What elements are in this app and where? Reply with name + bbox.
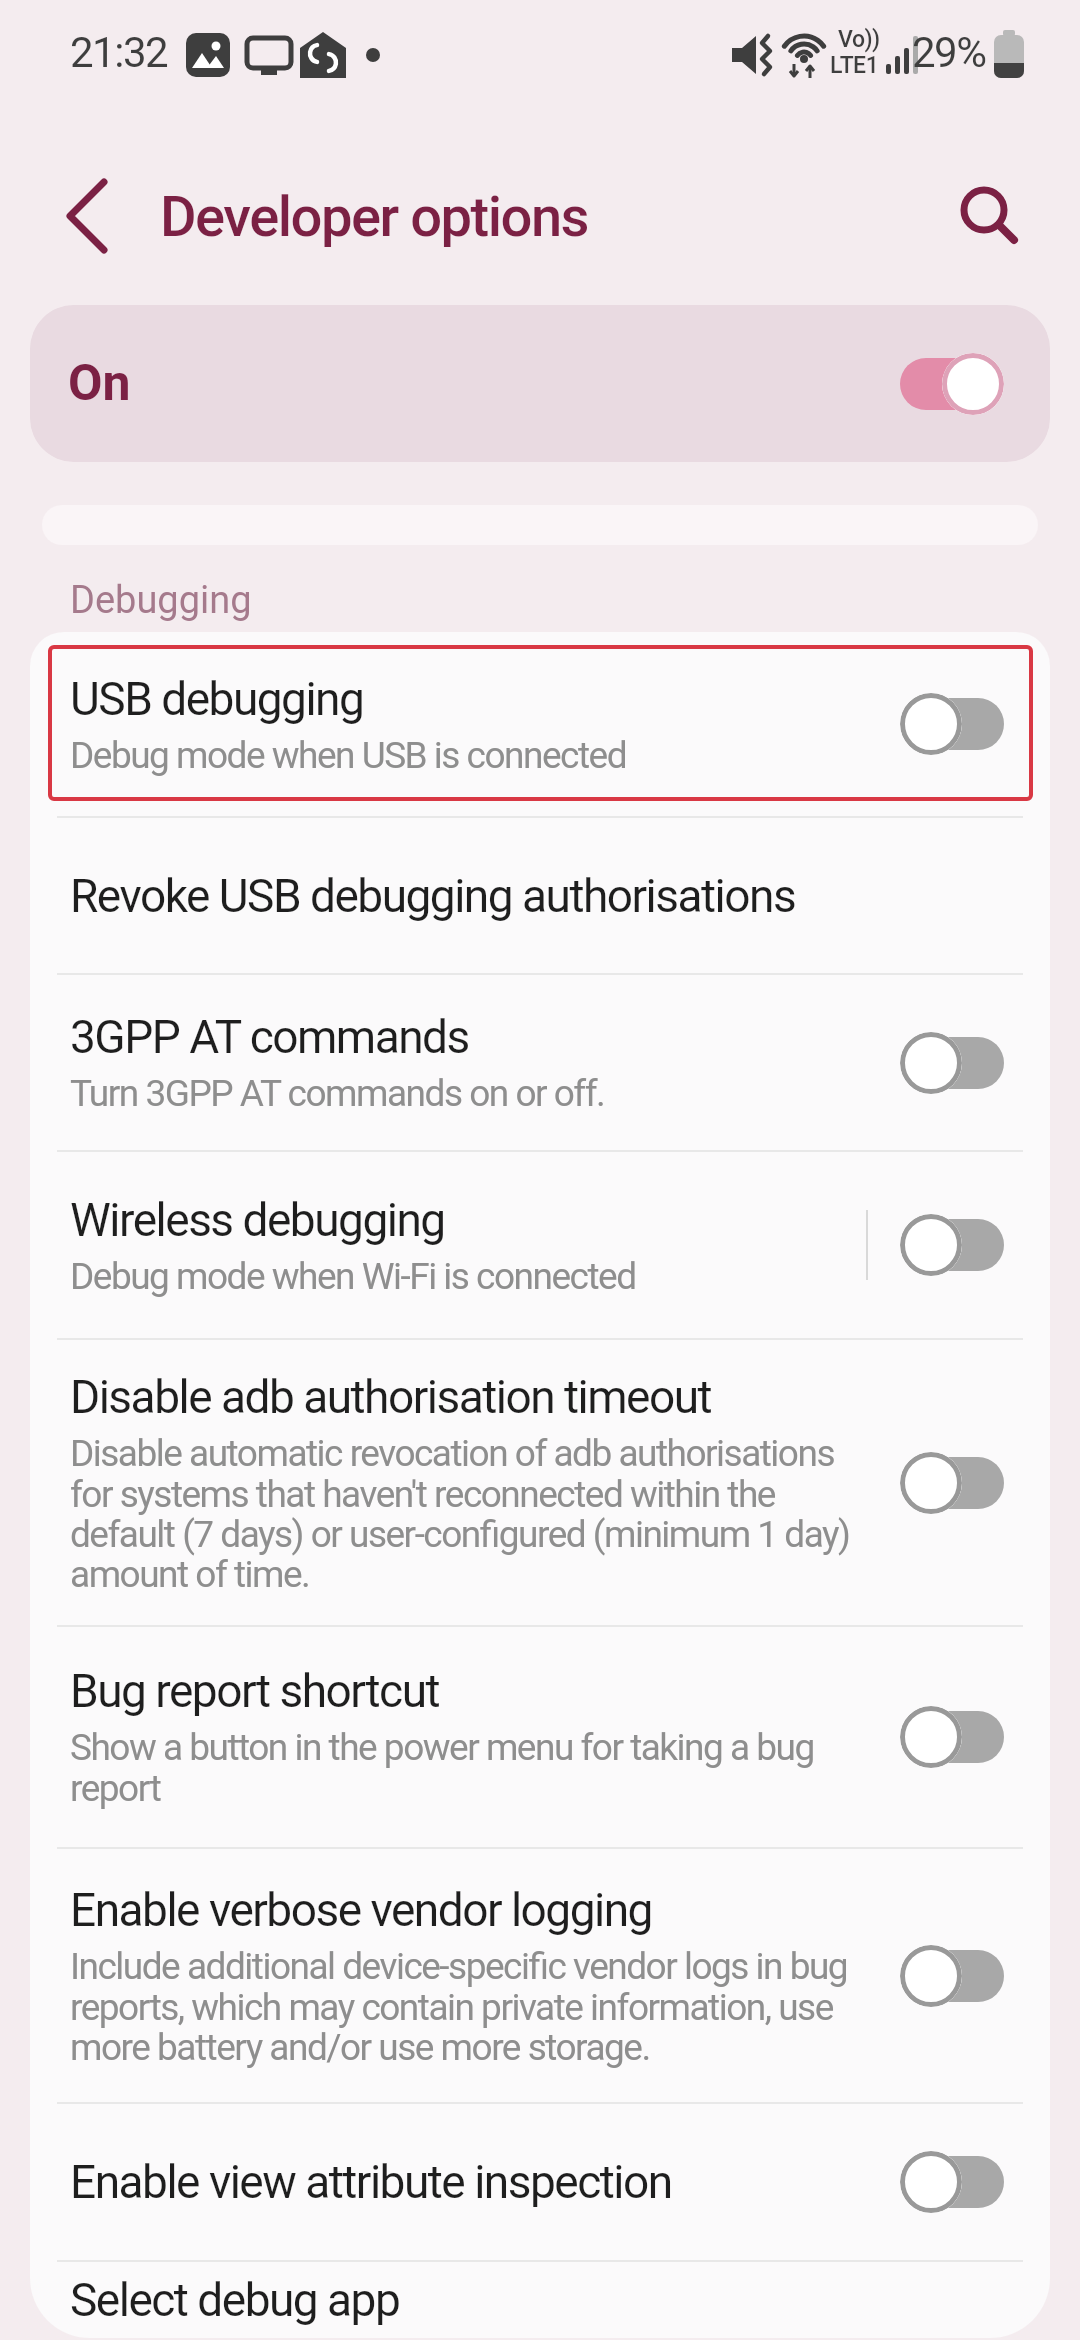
button[interactable]: Select debug app bbox=[30, 2262, 1050, 2338]
staticText: Vo)) bbox=[838, 26, 880, 53]
button[interactable]: On bbox=[30, 305, 1050, 462]
button[interactable] bbox=[60, 176, 120, 256]
staticText: LTE1 bbox=[830, 52, 879, 79]
staticText: Debug mode when USB is connected bbox=[70, 734, 627, 777]
staticText: 3GPP AT commands bbox=[70, 1010, 469, 1064]
staticText: Include additional device-specific vendo… bbox=[70, 1945, 848, 2069]
button[interactable]: Revoke USB debugging authorisations bbox=[30, 818, 1050, 973]
staticText: On bbox=[68, 354, 131, 413]
staticText: 29% bbox=[912, 28, 986, 77]
button[interactable]: USB debugging bbox=[30, 632, 1050, 816]
staticText: Developer options bbox=[160, 184, 588, 250]
button[interactable]: Disable adb authorisation timeout bbox=[30, 1340, 1050, 1625]
staticText: Disable adb authorisation timeout bbox=[70, 1370, 712, 1424]
button[interactable]: 3GPP AT commands bbox=[30, 975, 1050, 1150]
staticText: 21:32 bbox=[70, 28, 168, 77]
staticText: Enable view attribute inspection bbox=[70, 2155, 672, 2209]
button[interactable]: Enable verbose vendor logging bbox=[30, 1849, 1050, 2102]
staticText: Turn 3GPP AT commands on or off. bbox=[70, 1072, 605, 1115]
staticText: Bug report shortcut bbox=[70, 1664, 440, 1718]
staticText: Show a button in the power menu for taki… bbox=[70, 1726, 814, 1810]
staticText: Wireless debugging bbox=[70, 1193, 445, 1247]
staticText: USB debugging bbox=[70, 672, 364, 726]
staticText: Select debug app bbox=[70, 2273, 400, 2327]
staticText: Disable automatic revocation of adb auth… bbox=[70, 1432, 850, 1596]
button[interactable]: Enable view attribute inspection bbox=[30, 2104, 1050, 2260]
staticText: Revoke USB debugging authorisations bbox=[70, 869, 796, 923]
button[interactable] bbox=[948, 172, 1032, 256]
staticText: Enable verbose vendor logging bbox=[70, 1883, 652, 1937]
staticText: Debug mode when Wi-Fi is connected bbox=[70, 1255, 636, 1298]
button[interactable]: Bug report shortcut bbox=[30, 1627, 1050, 1847]
staticText: Debugging bbox=[70, 578, 252, 622]
button[interactable]: Wireless debugging bbox=[30, 1152, 1050, 1338]
